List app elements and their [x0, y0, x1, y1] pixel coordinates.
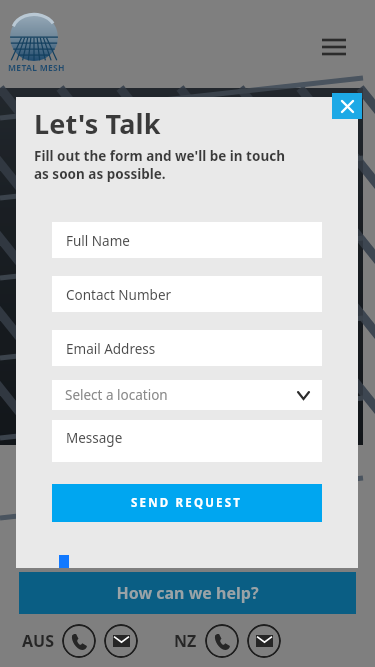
- staticText: Contact Number: [66, 286, 172, 304]
- button[interactable]: Call AUS: [62, 624, 96, 658]
- staticText: SEND REQUEST: [131, 495, 243, 511]
- button[interactable]: How can we help?: [19, 572, 356, 614]
- button[interactable]: Email Address: [52, 330, 322, 366]
- staticText: Let's Talk: [34, 105, 161, 142]
- button[interactable]: Message: [52, 420, 322, 462]
- staticText: NZ: [174, 630, 197, 652]
- staticText: Email Address: [66, 340, 156, 358]
- button[interactable]: Close: [332, 93, 362, 119]
- button[interactable]: Email NZ: [247, 624, 281, 658]
- button[interactable]: Menu: [312, 30, 356, 64]
- button[interactable]: SEND REQUEST: [52, 484, 322, 522]
- staticText: METAL MESH: [8, 62, 65, 74]
- staticText: Full Name: [66, 232, 130, 250]
- button[interactable]: Full Name: [52, 222, 322, 258]
- button[interactable]: Contact Number: [52, 276, 322, 312]
- button[interactable]: Select a location: [52, 380, 322, 410]
- button[interactable]: Call NZ: [205, 624, 239, 658]
- staticText: AUS: [22, 630, 54, 652]
- staticText: How can we help?: [116, 582, 259, 604]
- staticText: Message: [66, 429, 123, 447]
- staticText: Select a location: [65, 386, 168, 404]
- button[interactable]: Email AUS: [104, 624, 138, 658]
- staticText: Fill out the form and we'll be in touch …: [34, 147, 285, 183]
